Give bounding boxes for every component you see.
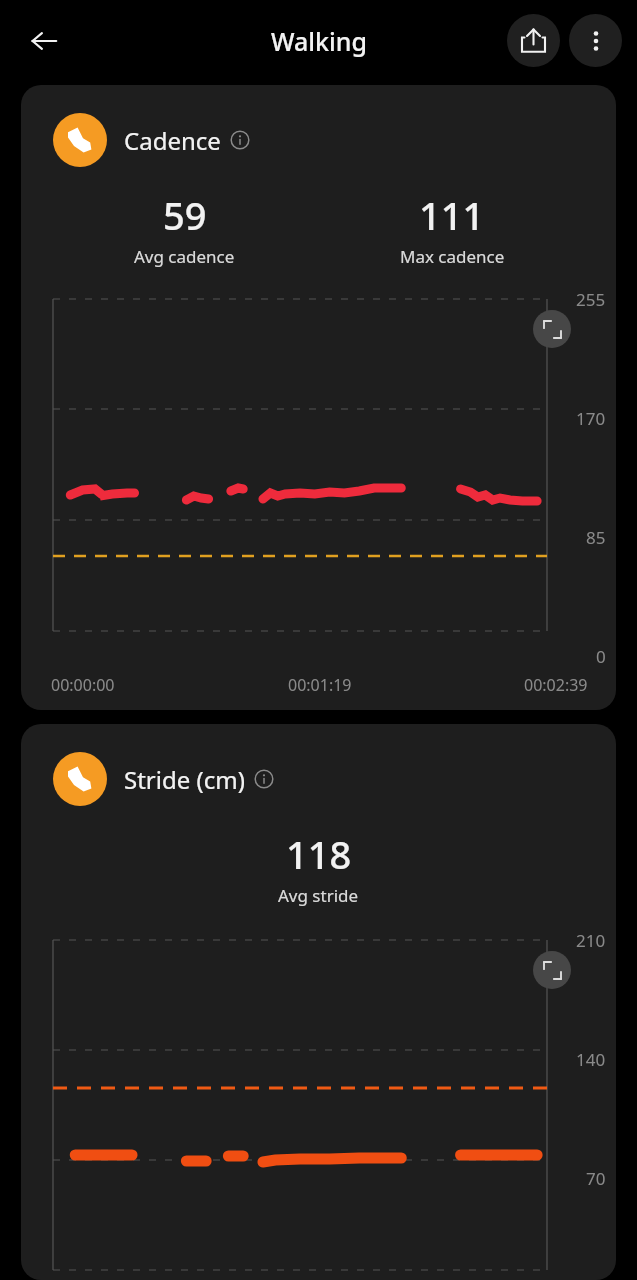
- button[interactable]: Cadence: [21, 85, 616, 710]
- staticText: Avg stride: [278, 884, 359, 907]
- button[interactable]: Stride (cm): [21, 724, 616, 1280]
- button[interactable]: Expand chart: [533, 951, 571, 989]
- staticText: Stride (cm): [124, 763, 245, 796]
- staticText: 59: [163, 189, 207, 241]
- staticText: 0: [596, 645, 606, 668]
- staticText: 85: [586, 526, 606, 549]
- staticText: 118: [286, 828, 352, 880]
- staticText: Max cadence: [400, 245, 505, 268]
- staticText: Cadence: [124, 124, 221, 157]
- staticText: 140: [576, 1048, 606, 1071]
- button[interactable]: Share: [507, 14, 560, 67]
- button[interactable]: Cadence: [21, 85, 616, 167]
- staticText: Walking: [271, 24, 367, 58]
- staticText: 170: [576, 407, 606, 430]
- button[interactable]: Expand chart: [533, 310, 571, 348]
- staticText: 00:01:19: [288, 674, 352, 696]
- staticText: 70: [586, 1167, 606, 1190]
- button[interactable]: Back: [20, 17, 68, 65]
- staticText: 00:02:39: [524, 674, 588, 696]
- staticText: Avg cadence: [134, 245, 235, 268]
- button[interactable]: Stride (cm): [21, 724, 616, 806]
- button[interactable]: More options: [569, 14, 622, 67]
- staticText: 210: [576, 929, 606, 952]
- staticText: 255: [576, 288, 606, 311]
- staticText: 111: [419, 189, 485, 241]
- staticText: 00:00:00: [51, 674, 115, 696]
